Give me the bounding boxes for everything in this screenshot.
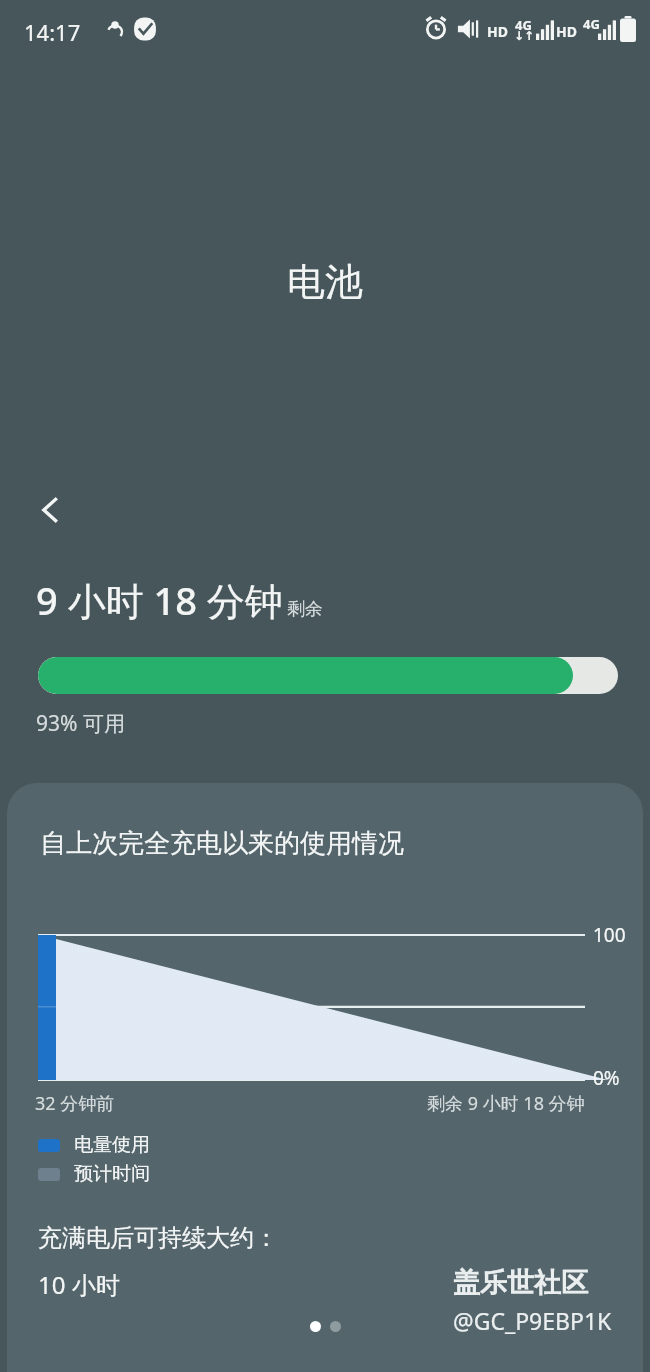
- staticText: ↓↑: [514, 29, 535, 43]
- button[interactable]: Page 1: [310, 1321, 321, 1332]
- staticText: 剩余 9 小时 18 分钟: [427, 1091, 585, 1116]
- staticText: 盖乐世社区: [453, 1266, 588, 1300]
- staticText: HD: [487, 22, 508, 41]
- button[interactable]: Page 2: [330, 1321, 341, 1332]
- staticText: 9 小时 18 分钟: [36, 574, 283, 626]
- staticText: 4G: [515, 16, 532, 34]
- button[interactable]: 电量使用: [38, 1133, 150, 1157]
- staticText: 32 分钟前: [35, 1091, 115, 1116]
- staticText: 100: [593, 922, 626, 948]
- staticText: 电量使用: [74, 1133, 150, 1157]
- staticText: 0%: [593, 1065, 620, 1091]
- staticText: 10 小时: [38, 1268, 120, 1301]
- staticText: 电池: [287, 258, 363, 306]
- staticText: 4G: [583, 15, 600, 33]
- staticText: 预计时间: [74, 1162, 150, 1186]
- staticText: 14:17: [24, 17, 81, 47]
- staticText: 剩余: [287, 598, 323, 621]
- button[interactable]: 预计时间: [38, 1162, 150, 1186]
- staticText: 93% 可用: [36, 709, 125, 738]
- button[interactable]: 自上次完全充电以来的使用情况: [7, 783, 643, 1372]
- staticText: @GC_P9EBP1K: [453, 1305, 612, 1336]
- button[interactable]: Battery level 93 percent: [38, 657, 618, 694]
- staticText: 自上次完全充电以来的使用情况: [40, 827, 404, 860]
- staticText: 充满电后可持续大约：: [38, 1223, 278, 1253]
- staticText: HD: [556, 22, 577, 41]
- button[interactable]: Back: [22, 482, 78, 538]
